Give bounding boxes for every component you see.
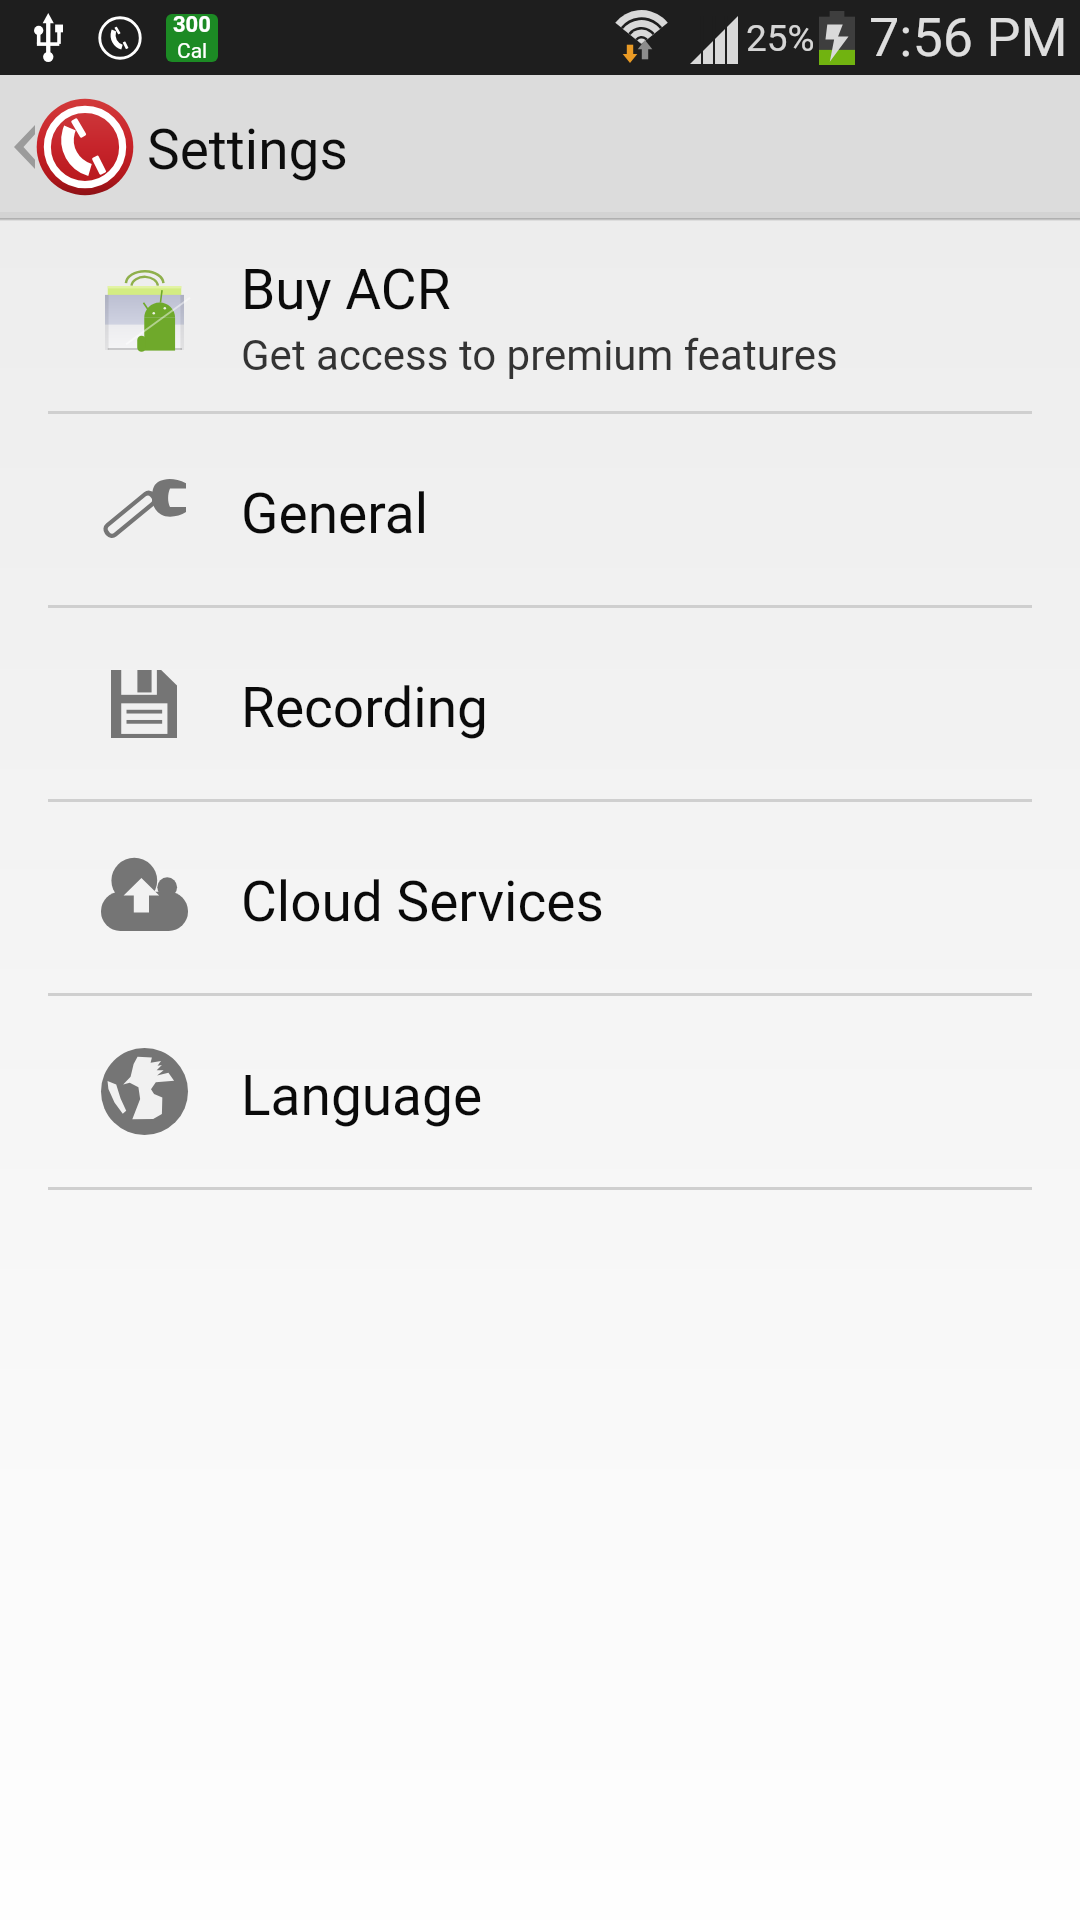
button[interactable]: Recording <box>0 608 1080 799</box>
button[interactable]: Buy ACR <box>0 218 1080 411</box>
staticText: Get access to premium features <box>241 331 838 380</box>
staticText: Cal <box>177 39 208 62</box>
button[interactable]: Navigate up <box>2 99 46 195</box>
staticText: Settings <box>147 118 348 182</box>
staticText: Recording <box>241 676 488 740</box>
staticText: Buy ACR <box>241 258 451 322</box>
staticText: 7:56 PM <box>869 6 1068 69</box>
staticText: 25% <box>746 17 815 60</box>
staticText: Cloud Services <box>241 870 604 934</box>
button[interactable]: Language <box>0 996 1080 1187</box>
button[interactable]: Cloud Services <box>0 802 1080 993</box>
staticText: Language <box>241 1064 483 1128</box>
staticText: 300 <box>173 14 211 38</box>
button[interactable]: General <box>0 414 1080 605</box>
staticText: General <box>241 482 429 546</box>
